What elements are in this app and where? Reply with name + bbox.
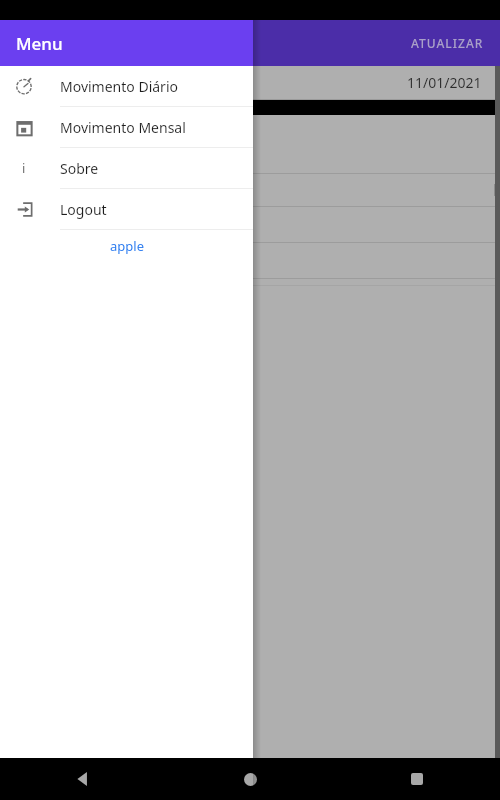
button[interactable]: Home [233, 762, 267, 796]
button[interactable]: Logout [0, 189, 253, 229]
staticText: i [22, 159, 26, 177]
button[interactable]: apple [110, 237, 144, 255]
staticText: 0 [123, 120, 130, 136]
button[interactable]: GURGEL [0, 243, 500, 278]
staticText: FIELDER [39, 216, 89, 234]
staticText: Logout [60, 200, 107, 219]
button[interactable]: ATUALIZAR [405, 29, 490, 57]
button[interactable]: Movimento Mensal [0, 107, 253, 147]
staticText: Movimento Mensal [60, 118, 186, 137]
staticText: Menu [16, 32, 63, 55]
staticText: Movimento Diário [60, 77, 178, 96]
staticText: Cobrado [117, 103, 147, 113]
staticText: Cobr… [195, 182, 231, 198]
button[interactable]: Back [66, 762, 100, 796]
staticText: Modelo [40, 182, 84, 198]
staticText: 0 [131, 216, 139, 234]
staticText: Total [127, 182, 155, 198]
staticText: 0 [200, 216, 208, 234]
staticText: ATUALIZAR [411, 35, 484, 51]
button[interactable]: Movimento Diário [0, 66, 253, 106]
staticText: 0 [123, 145, 130, 161]
staticText: 11/01/2021 [407, 73, 482, 92]
staticText: Sobre [60, 159, 99, 178]
button[interactable]: i [0, 148, 253, 188]
button[interactable]: Recent apps [400, 762, 434, 796]
button[interactable]: … [0, 207, 500, 242]
